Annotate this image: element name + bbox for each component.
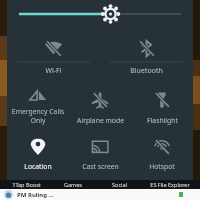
- staticText: Wi-Fi: [45, 66, 62, 76]
- staticText: Airplane mode: [77, 116, 124, 125]
- button[interactable]: ES File Explorer: [143, 180, 197, 189]
- staticText: Social: [112, 181, 127, 188]
- staticText: Flashlight: [147, 116, 178, 125]
- staticText: Emergency Calls Only: [9, 107, 67, 125]
- staticText: Games: [64, 181, 82, 188]
- staticText: ES File Explorer: [150, 181, 190, 188]
- button[interactable]: Emergency Calls Only: [7, 83, 69, 129]
- button[interactable]: Bluetooth: [100, 35, 193, 79]
- button[interactable]: Wi-Fi: [7, 35, 100, 79]
- staticText: Cast screen: [82, 162, 119, 171]
- button[interactable]: Flashlight: [131, 83, 193, 129]
- button[interactable]: Brightness: [7, 3, 193, 25]
- staticText: PM Ruling ...: [17, 191, 54, 199]
- staticText: Location: [24, 162, 52, 171]
- staticText: Hotspot: [149, 162, 175, 171]
- button[interactable]: Airplane mode: [69, 83, 131, 129]
- button[interactable]: Social: [96, 180, 143, 189]
- button[interactable]: Cast screen: [69, 131, 131, 175]
- staticText: Bluetooth: [130, 66, 163, 76]
- button[interactable]: 1Tap Boost: [3, 180, 49, 189]
- button[interactable]: Hotspot: [131, 131, 193, 175]
- staticText: 1Tap Boost: [12, 181, 41, 188]
- button[interactable]: Games: [49, 180, 96, 189]
- button[interactable]: Location: [7, 131, 69, 175]
